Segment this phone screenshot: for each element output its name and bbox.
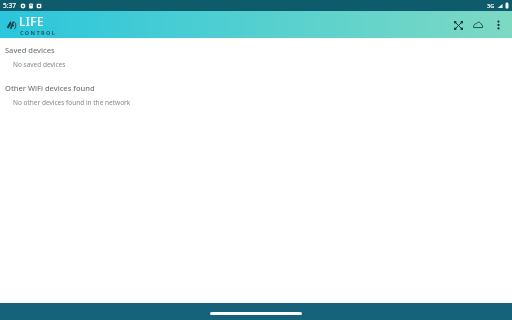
button[interactable]: LIFE [6,13,57,36]
staticText: Saved devices [5,45,55,55]
staticText: No saved devices [13,60,66,69]
button[interactable]: Pair device [448,15,468,35]
staticText: No other devices found in the network [13,98,131,107]
staticText: 5:37 [3,1,16,10]
button[interactable]: More options [488,15,508,35]
staticText: 3G [487,2,495,9]
button[interactable]: Cloud [468,15,488,35]
button[interactable]: Home gesture [210,312,302,315]
staticText: LIFE [19,13,45,29]
staticText: Other WiFi devices found [5,83,95,93]
staticText: CONTROL [20,29,57,36]
